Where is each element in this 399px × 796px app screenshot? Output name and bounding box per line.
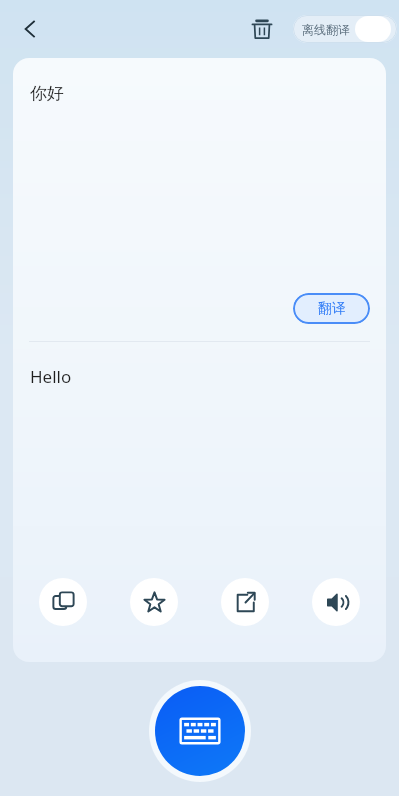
button[interactable]: Copy — [39, 578, 87, 626]
button[interactable]: Speak — [312, 578, 360, 626]
button[interactable]: 翻译 — [293, 293, 370, 324]
button[interactable]: Keyboard input — [149, 680, 251, 782]
button[interactable]: 离线翻译 — [293, 15, 397, 43]
button[interactable]: Share — [221, 578, 269, 626]
staticText: Hello — [30, 365, 72, 388]
staticText: 离线翻译 — [302, 22, 350, 37]
staticText: 翻译 — [318, 300, 346, 318]
staticText: 你好 — [30, 83, 64, 104]
button[interactable]: Delete — [240, 7, 284, 51]
button[interactable]: Back — [8, 7, 52, 51]
button[interactable]: Favorite — [130, 578, 178, 626]
